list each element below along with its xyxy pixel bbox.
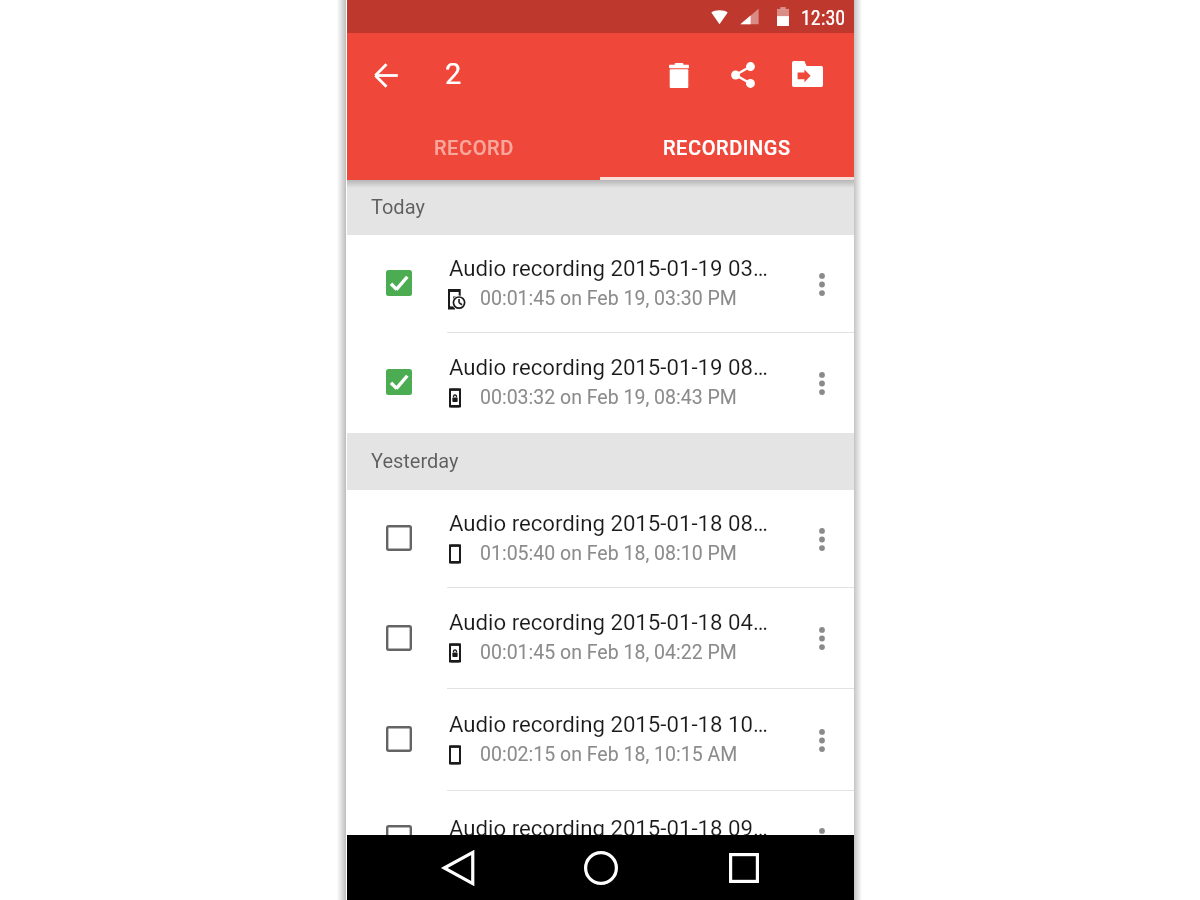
staticText: RECORD xyxy=(434,136,514,159)
staticText: Audio recording 2015-01-18 04… xyxy=(449,609,768,635)
button[interactable]: Delete xyxy=(647,33,711,117)
button[interactable]: Select recording xyxy=(386,625,412,651)
button[interactable]: Back xyxy=(426,835,490,900)
button[interactable]: More options xyxy=(790,490,854,588)
button[interactable]: RECORDINGS xyxy=(600,117,854,180)
button[interactable]: Select recording xyxy=(347,333,854,433)
staticText: Audio recording 2015-01-18 08… xyxy=(449,510,768,536)
button[interactable]: More options xyxy=(790,588,854,689)
staticText: 00:03:12 on Feb 18, 09:02 AM xyxy=(480,847,738,859)
button[interactable]: Select recording xyxy=(347,791,854,835)
button[interactable]: Select recording xyxy=(347,235,854,333)
button[interactable]: Back xyxy=(347,33,425,117)
staticText: Audio recording 2015-01-18 10… xyxy=(449,711,768,737)
staticText: 01:05:40 on Feb 18, 08:10 PM xyxy=(480,542,737,565)
button[interactable]: Home xyxy=(569,835,633,900)
button[interactable]: Select recording xyxy=(347,490,854,588)
button[interactable]: More options xyxy=(790,235,854,333)
staticText: Audio recording 2015-01-19 03… xyxy=(449,255,768,281)
button[interactable]: More options xyxy=(790,689,854,791)
button[interactable]: More options xyxy=(790,333,854,433)
button[interactable]: Recent apps xyxy=(712,835,776,900)
staticText: RECORDINGS xyxy=(663,136,791,159)
button[interactable]: Select recording xyxy=(386,270,412,296)
button[interactable]: Select recording xyxy=(386,525,412,551)
button[interactable]: Select recording xyxy=(386,726,412,752)
button[interactable]: Select recording xyxy=(347,689,854,791)
button[interactable]: RECORD xyxy=(347,117,600,180)
staticText: Audio recording 2015-01-18 09… xyxy=(449,815,768,841)
button[interactable]: Move to folder xyxy=(775,33,839,117)
staticText: 12:30 xyxy=(801,6,846,29)
staticText: 00:01:45 on Feb 19, 03:30 PM xyxy=(480,287,737,310)
button[interactable]: Select recording xyxy=(347,588,854,689)
staticText: Audio recording 2015-01-19 08… xyxy=(449,354,768,380)
staticText: 2 xyxy=(445,57,462,91)
button[interactable]: Share xyxy=(711,33,775,117)
staticText: 00:02:15 on Feb 18, 10:15 AM xyxy=(480,743,738,766)
button[interactable]: Select recording xyxy=(386,369,412,395)
staticText: Today xyxy=(371,195,425,218)
button[interactable]: Select recording xyxy=(386,825,412,851)
staticText: 00:03:32 on Feb 19, 08:43 PM xyxy=(480,386,737,409)
staticText: 00:01:45 on Feb 18, 04:22 PM xyxy=(480,641,737,664)
staticText: Yesterday xyxy=(371,449,459,472)
button[interactable]: More options xyxy=(790,817,854,861)
